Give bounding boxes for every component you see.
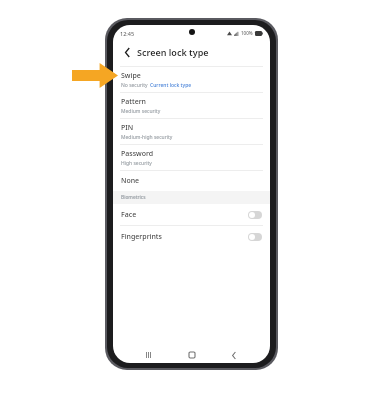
button[interactable]: Password [113, 145, 270, 170]
staticText: No security [121, 82, 148, 89]
staticText: Pattern [121, 97, 147, 107]
staticText: PIN [121, 123, 134, 133]
staticText: Face [121, 210, 137, 220]
staticText: Fingerprints [121, 232, 162, 242]
button[interactable]: Recent apps [142, 348, 156, 362]
button[interactable]: Back [120, 45, 134, 59]
button[interactable]: Pattern [113, 93, 270, 118]
button[interactable]: Face toggle [248, 211, 262, 219]
button[interactable]: Fingerprints [113, 226, 270, 247]
button[interactable]: Fingerprints toggle [248, 233, 262, 241]
button[interactable]: PIN [113, 119, 270, 144]
button[interactable]: Back [227, 348, 241, 362]
button[interactable]: None [113, 171, 270, 191]
staticText: Medium security [121, 108, 161, 115]
staticText: Swipe [121, 71, 141, 81]
button[interactable]: Face [113, 204, 270, 225]
button[interactable]: Swipe [113, 67, 270, 92]
staticText: Current lock type [150, 82, 192, 89]
staticText: High security [121, 160, 152, 167]
staticText: Password [121, 149, 154, 159]
staticText: Medium-high security [121, 134, 173, 141]
staticText: 12:45 [120, 30, 135, 37]
button[interactable]: Home [185, 348, 199, 362]
staticText: Biometrics [121, 194, 146, 201]
staticText: Screen lock type [137, 46, 209, 58]
staticText: None [121, 176, 140, 186]
staticText: 100% [241, 30, 253, 36]
